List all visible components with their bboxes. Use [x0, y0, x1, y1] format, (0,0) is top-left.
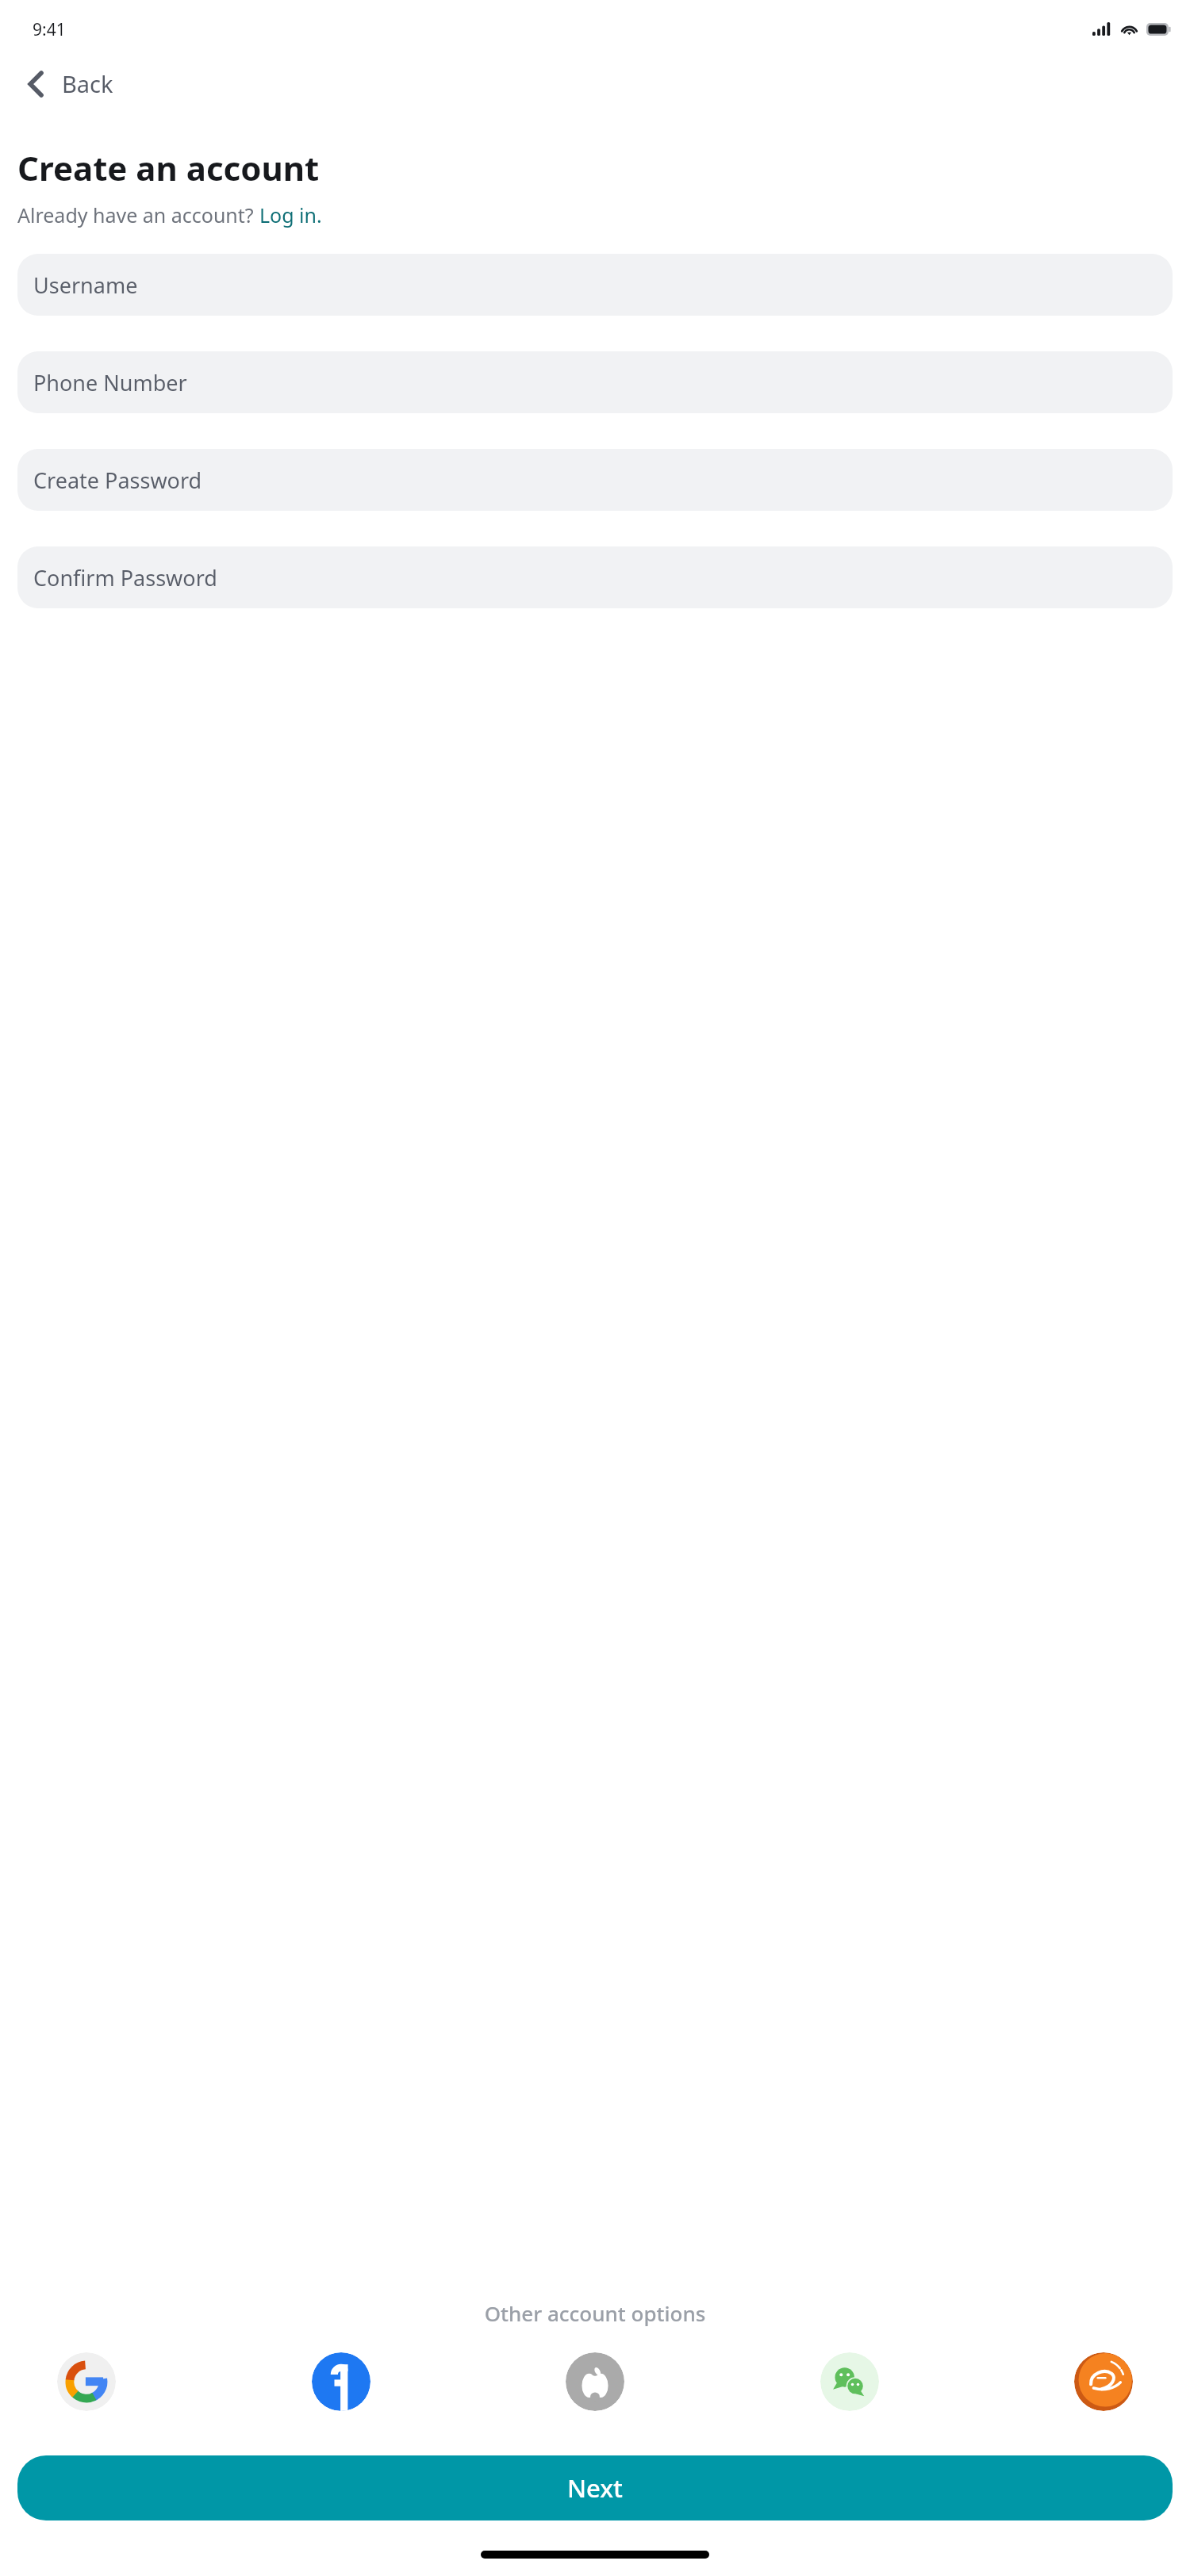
staticText: Confirm Password: [33, 563, 217, 592]
staticText: 9:41: [33, 18, 66, 41]
button[interactable]: Create Password: [17, 449, 1173, 511]
button[interactable]: Sign in with Facebook: [312, 2352, 370, 2411]
button[interactable]: Next: [17, 2455, 1173, 2520]
button[interactable]: Log in.: [259, 201, 322, 228]
button[interactable]: Confirm Password: [17, 546, 1173, 608]
button[interactable]: Sign in with Apple: [566, 2352, 624, 2411]
staticText: Create an account: [17, 145, 320, 190]
staticText: Back: [62, 68, 113, 99]
button[interactable]: Sign in with Alipay: [1074, 2352, 1133, 2411]
staticText: Other account options: [0, 2299, 1190, 2327]
button[interactable]: Back: [21, 60, 128, 107]
staticText: Log in.: [259, 201, 322, 228]
button[interactable]: Username: [17, 254, 1173, 316]
staticText: Create Password: [33, 466, 202, 495]
staticText: Next: [567, 2471, 623, 2505]
button[interactable]: Sign in with Google: [57, 2352, 116, 2411]
staticText: Phone Number: [33, 368, 187, 397]
staticText: Already have an account?: [17, 201, 259, 228]
button[interactable]: Sign in with WeChat: [820, 2352, 879, 2411]
staticText: Username: [33, 270, 138, 300]
button[interactable]: Phone Number: [17, 351, 1173, 413]
